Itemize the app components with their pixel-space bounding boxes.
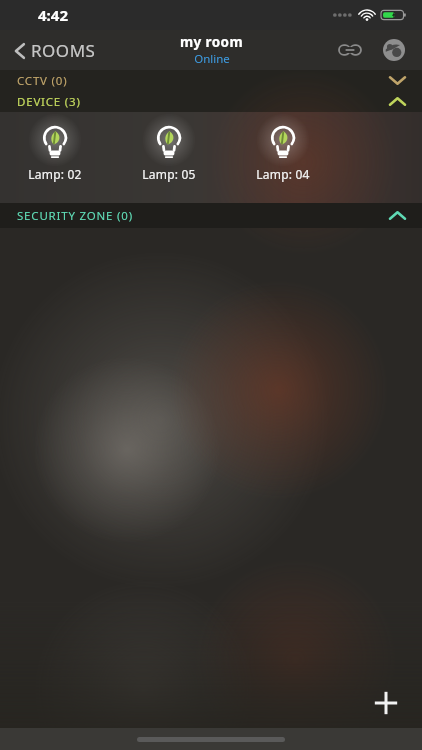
button[interactable]: ROOMS — [10, 35, 100, 66]
staticText: SECURITY ZONE (0) — [17, 208, 133, 224]
button[interactable]: CCTV (0) — [0, 70, 422, 91]
button[interactable]: Link — [330, 30, 370, 70]
staticText: Online — [194, 51, 230, 67]
button[interactable]: Web — [374, 30, 414, 70]
staticText: DEVICE (3) — [17, 94, 81, 110]
button[interactable]: SECURITY ZONE (0) — [0, 203, 422, 228]
button[interactable]: my room — [180, 33, 243, 67]
button[interactable]: Lamp: 05 — [132, 124, 205, 182]
staticText: 4:42 — [38, 5, 68, 25]
button[interactable]: Add — [364, 681, 408, 725]
staticText: Lamp: 04 — [256, 166, 310, 182]
staticText: Lamp: 02 — [28, 166, 82, 182]
staticText: ROOMS — [31, 39, 96, 62]
button[interactable]: DEVICE (3) — [0, 91, 422, 112]
staticText: my room — [180, 33, 243, 51]
button[interactable]: Lamp: 02 — [18, 124, 91, 182]
button[interactable]: Lamp: 04 — [246, 124, 319, 182]
staticText: Lamp: 05 — [142, 166, 196, 182]
staticText: CCTV (0) — [17, 73, 68, 89]
